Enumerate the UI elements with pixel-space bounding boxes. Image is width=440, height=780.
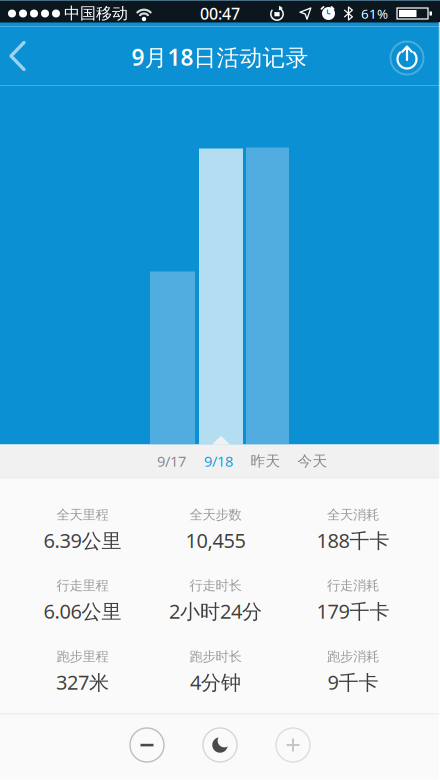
- staticText: 2小时24分: [169, 598, 262, 624]
- staticText: 跑步时长: [189, 648, 241, 665]
- staticText: 跑步里程: [56, 648, 108, 665]
- staticText: 179千卡: [316, 598, 389, 624]
- staticText: 全天步数: [189, 506, 241, 523]
- button[interactable]: [0, 29, 35, 83]
- staticText: 6.39公里: [43, 527, 121, 553]
- staticText: 9/17: [157, 451, 186, 471]
- button[interactable]: [203, 728, 237, 762]
- button[interactable]: [276, 728, 310, 762]
- staticText: 今天: [297, 452, 327, 470]
- staticText: 327米: [56, 669, 109, 695]
- button[interactable]: [387, 34, 440, 78]
- staticText: 全天消耗: [327, 506, 379, 523]
- staticText: 行走消耗: [327, 577, 379, 594]
- button[interactable]: 9/18: [195, 444, 242, 477]
- button[interactable]: [130, 728, 164, 762]
- staticText: 9千卡: [327, 669, 378, 695]
- staticText: 00:47: [200, 3, 240, 24]
- staticText: 行走时长: [189, 577, 241, 594]
- staticText: 跑步消耗: [327, 648, 379, 665]
- staticText: 中国移动: [64, 4, 128, 23]
- staticText: 行走里程: [56, 577, 108, 594]
- staticText: 188千卡: [316, 527, 389, 553]
- staticText: 10,455: [185, 527, 245, 553]
- staticText: 61%: [361, 5, 388, 22]
- button[interactable]: 昨天: [242, 444, 289, 477]
- staticText: 昨天: [250, 452, 280, 470]
- button[interactable]: 9/17: [148, 444, 195, 477]
- button[interactable]: 今天: [289, 444, 336, 477]
- staticText: 9/18: [204, 451, 233, 471]
- staticText: 4分钟: [190, 669, 241, 695]
- staticText: 全天里程: [56, 506, 108, 523]
- staticText: 6.06公里: [43, 598, 121, 624]
- staticText: 9月18日活动记录: [131, 42, 308, 72]
